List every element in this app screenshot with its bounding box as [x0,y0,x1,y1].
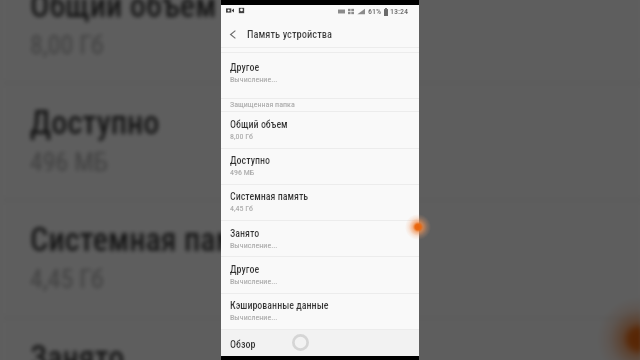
staticText: 8,00 Гб [30,30,104,60]
staticText: 8,00 Гб [230,132,253,141]
staticText: Вычисление... [230,75,278,84]
staticText: Другое [230,62,260,74]
button[interactable]: Системная память [221,184,419,220]
staticText: 4,45 Гб [230,204,253,213]
button[interactable]: Кэшированные данные [221,293,419,329]
staticText: Доступно [30,104,160,142]
staticText: 13:24 [390,7,409,16]
button[interactable]: Системная память [2,200,640,317]
staticText: Память устройства [247,28,333,40]
staticText: Доступно [230,155,271,167]
staticText: 496 МБ [230,168,255,177]
button[interactable]: Общий объем [2,0,640,83]
staticText: Обзор [230,339,256,351]
button[interactable]: Занято [2,318,640,360]
button[interactable]: Back [221,20,245,48]
staticText: Занято [30,339,125,360]
button[interactable]: Общий объем [221,112,419,148]
staticText: Общий объем [30,0,217,25]
staticText: 496 МБ [30,147,108,177]
button[interactable]: Обзор [221,329,419,356]
button[interactable]: Занято [221,221,419,257]
staticText: Защищенная папка [230,100,295,109]
staticText: Вычисление... [230,241,278,250]
button[interactable]: Другое [221,55,419,91]
staticText: Системная память [30,221,283,259]
staticText: Общий объем [230,119,288,131]
staticText: Вычисление... [230,313,278,322]
button[interactable]: Доступно [2,83,640,200]
button[interactable]: Другое [221,257,419,293]
staticText: Вычисление... [230,277,278,286]
staticText: Кэшированные данные [230,300,329,312]
staticText: Системная память [230,191,309,203]
staticText: Другое [230,264,260,276]
button[interactable]: Доступно [221,148,419,184]
staticText: 4,45 Гб [30,264,104,294]
staticText: Занято [230,228,260,240]
staticText: 61% [368,7,382,16]
